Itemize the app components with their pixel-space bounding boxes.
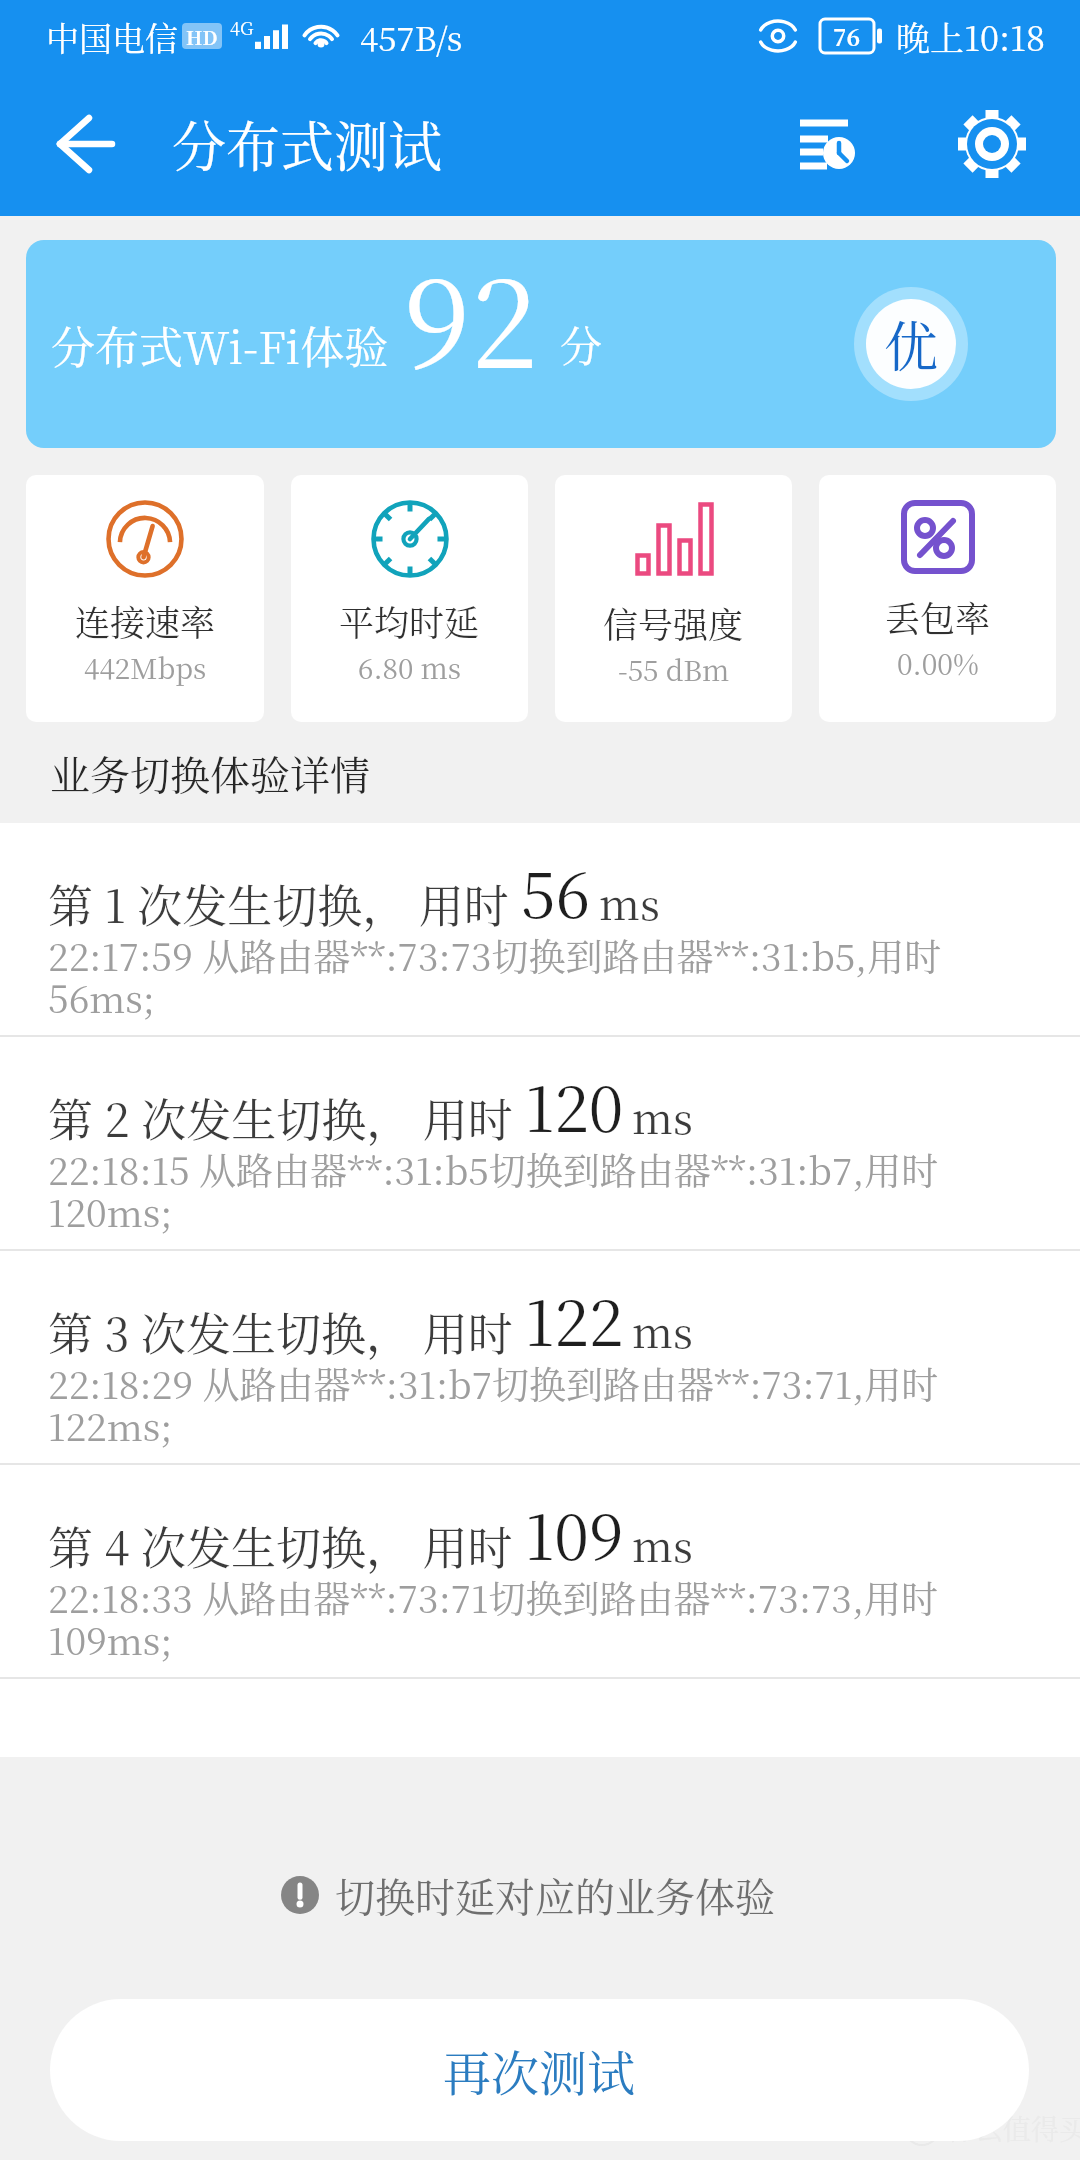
staticText: 晚上10:18 xyxy=(896,12,1046,61)
staticText: 分布式测试 xyxy=(172,105,442,183)
button[interactable]: 第 4 次发生切换， 用时 xyxy=(0,1465,1080,1677)
staticText: 92 xyxy=(403,240,538,402)
staticText: 4G xyxy=(230,14,254,40)
staticText: 业务切换体验详情 xyxy=(50,744,370,801)
staticText: 切换时延对应的业务体验 xyxy=(335,1866,775,1923)
staticText: 109 xyxy=(525,1489,624,1578)
button[interactable]: 连接速率 xyxy=(26,475,264,722)
staticText: 分 xyxy=(560,314,603,374)
staticText: 丢包率 xyxy=(885,592,991,642)
button[interactable]: 第 1 次发生切换， 用时 xyxy=(0,823,1080,1035)
staticText: 中国电信 xyxy=(46,13,178,60)
staticText: 优 xyxy=(884,305,938,383)
staticText: 什么值得买 xyxy=(947,2108,1080,2148)
button[interactable]: Settings xyxy=(920,72,1064,216)
staticText: 第 2 次发生切换， 用时 xyxy=(48,1085,525,1150)
button[interactable]: 平均时延 xyxy=(291,475,528,722)
staticText: 第 1 次发生切换， 用时 xyxy=(48,871,521,936)
staticText: 22:18:15 从路由器**:31:b5切换到路由器**:31:b7,用时12… xyxy=(48,1142,988,1238)
staticText: ms xyxy=(599,872,660,932)
button[interactable]: History xyxy=(761,72,905,216)
staticText: 信号强度 xyxy=(603,598,744,648)
staticText: 122 xyxy=(525,1275,624,1364)
staticText: HD xyxy=(186,23,218,49)
staticText: 56 xyxy=(521,847,591,936)
button[interactable]: 第 2 次发生切换， 用时 xyxy=(0,1037,1080,1249)
staticText: -55 dBm xyxy=(618,649,730,689)
staticText: 第 4 次发生切换， 用时 xyxy=(48,1513,525,1578)
staticText: ms xyxy=(632,1514,693,1574)
staticText: ms xyxy=(632,1086,693,1146)
button[interactable]: 分布式Wi-Fi体验 xyxy=(26,240,1056,448)
staticText: 120 xyxy=(525,1061,624,1150)
staticText: 分布式Wi-Fi体验 xyxy=(51,313,389,376)
staticText: 平均时延 xyxy=(339,596,480,646)
button[interactable]: 再次测试 xyxy=(50,1999,1029,2141)
staticText: 22:18:33 从路由器**:73:71切换到路由器**:73:73,用时10… xyxy=(48,1570,988,1666)
button[interactable]: 丢包率 xyxy=(819,475,1056,722)
staticText: 6.80 ms xyxy=(358,647,462,687)
staticText: 76 xyxy=(833,20,861,53)
staticText: 再次测试 xyxy=(443,2036,636,2105)
staticText: 22:18:29 从路由器**:31:b7切换到路由器**:73:71,用时12… xyxy=(48,1356,988,1452)
button[interactable]: 第 3 次发生切换， 用时 xyxy=(0,1251,1080,1463)
staticText: 连接速率 xyxy=(75,596,216,646)
staticText: 第 3 次发生切换， 用时 xyxy=(48,1299,525,1364)
staticText: ms xyxy=(632,1300,693,1360)
button[interactable]: Back xyxy=(0,72,172,216)
button[interactable]: 信号强度 xyxy=(555,475,792,722)
staticText: 457B/s xyxy=(360,13,463,60)
staticText: 22:17:59 从路由器**:73:73切换到路由器**:31:b5,用时56… xyxy=(48,928,988,1024)
staticText: 0.00% xyxy=(897,643,979,683)
staticText: 442Mbps xyxy=(84,647,207,687)
